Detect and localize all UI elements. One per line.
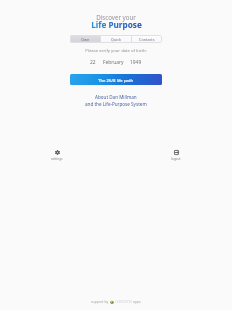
staticText: logout (171, 157, 181, 161)
button[interactable]: Quick (101, 35, 131, 43)
button[interactable]: logout (166, 150, 186, 161)
button[interactable]: Contacts (132, 35, 162, 43)
staticText: settings (51, 157, 63, 161)
staticText: About Dan Millman (95, 94, 137, 100)
staticText: 1949 (130, 59, 142, 66)
button[interactable]: February (103, 59, 124, 66)
staticText: CONCRETE (114, 299, 133, 304)
staticText: February (103, 59, 124, 66)
button[interactable]: The 26/8 life path (70, 74, 162, 85)
staticText: Life Purpose (91, 19, 142, 30)
button[interactable]: 1949 (130, 59, 142, 66)
other: settings (55, 150, 60, 155)
other: logout (174, 150, 179, 155)
staticText: Contacts (139, 37, 155, 42)
staticText: and the Life-Purpose System (85, 101, 147, 107)
button[interactable]: settings (47, 150, 67, 161)
staticText: Please verify your date of birth: (85, 48, 147, 54)
button[interactable]: 22 (90, 59, 96, 66)
staticText: Discover your (96, 13, 136, 21)
button[interactable]: About Dan Millman (85, 94, 147, 107)
staticText: apps (133, 299, 141, 304)
staticText: Quick (111, 37, 122, 42)
staticText: 22 (90, 59, 96, 66)
staticText: The 26/8 life path (98, 77, 134, 83)
staticText: Own (81, 37, 90, 42)
button[interactable]: Own (70, 35, 100, 43)
staticText: support by (91, 299, 110, 304)
